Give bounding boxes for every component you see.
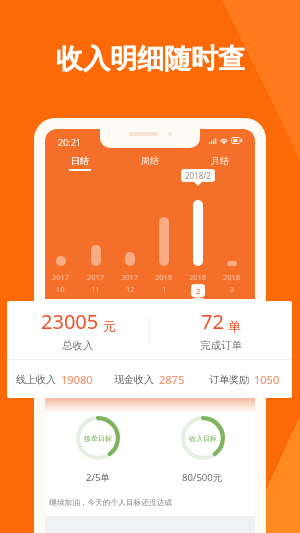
button[interactable]: 72	[150, 308, 292, 352]
button[interactable]: 月结	[185, 151, 255, 173]
staticText: 2018	[155, 272, 173, 282]
staticText: 收入明细随时查	[56, 42, 245, 76]
staticText: 接单目标	[84, 434, 112, 443]
button[interactable]: 23005	[7, 308, 149, 352]
staticText: 10	[56, 284, 65, 294]
staticText: 单	[228, 318, 241, 334]
staticText: 80/500元	[182, 471, 223, 484]
staticText: 2017	[87, 272, 105, 282]
staticText: 订单奖励	[209, 373, 249, 386]
staticText: 完成订单	[200, 339, 242, 352]
button[interactable]: 接单目标	[45, 416, 150, 484]
staticText: 2018/2	[185, 170, 211, 181]
staticText: 元	[103, 318, 116, 334]
staticText: 1050	[254, 372, 280, 387]
staticText: 1	[162, 284, 167, 294]
button[interactable]: 周结	[115, 151, 185, 173]
staticText: 2	[196, 286, 201, 296]
button[interactable]: 现金收入	[102, 372, 197, 387]
staticText: 2/5单	[86, 471, 110, 484]
staticText: 继续加油，今天的个人目标还没达成	[49, 498, 172, 508]
staticText: 现金收入	[114, 373, 154, 386]
staticText: 11	[91, 284, 100, 294]
staticText: 2017	[52, 272, 70, 282]
staticText: 总收入	[62, 339, 94, 352]
button[interactable]: 收入目标	[150, 416, 255, 484]
staticText: 线上收入	[16, 373, 56, 386]
staticText: 2875	[159, 372, 185, 387]
staticText: 23005	[41, 308, 99, 335]
staticText: 月结	[211, 155, 229, 166]
button[interactable]: 日结	[45, 151, 115, 173]
staticText: 20:21	[58, 136, 82, 148]
staticText: 2017	[121, 272, 139, 282]
staticText: 72	[201, 308, 224, 335]
staticText: 2018	[223, 272, 241, 282]
staticText: 2018	[189, 272, 207, 282]
staticText: 19080	[61, 372, 93, 387]
staticText: 3	[230, 284, 235, 294]
staticText: 日结	[71, 155, 89, 166]
staticText: 收入目标	[189, 434, 217, 443]
staticText: 周结	[141, 155, 159, 166]
button[interactable]: 线上收入	[7, 372, 102, 387]
button[interactable]: 订单奖励	[197, 372, 292, 387]
staticText: 12	[126, 284, 135, 294]
